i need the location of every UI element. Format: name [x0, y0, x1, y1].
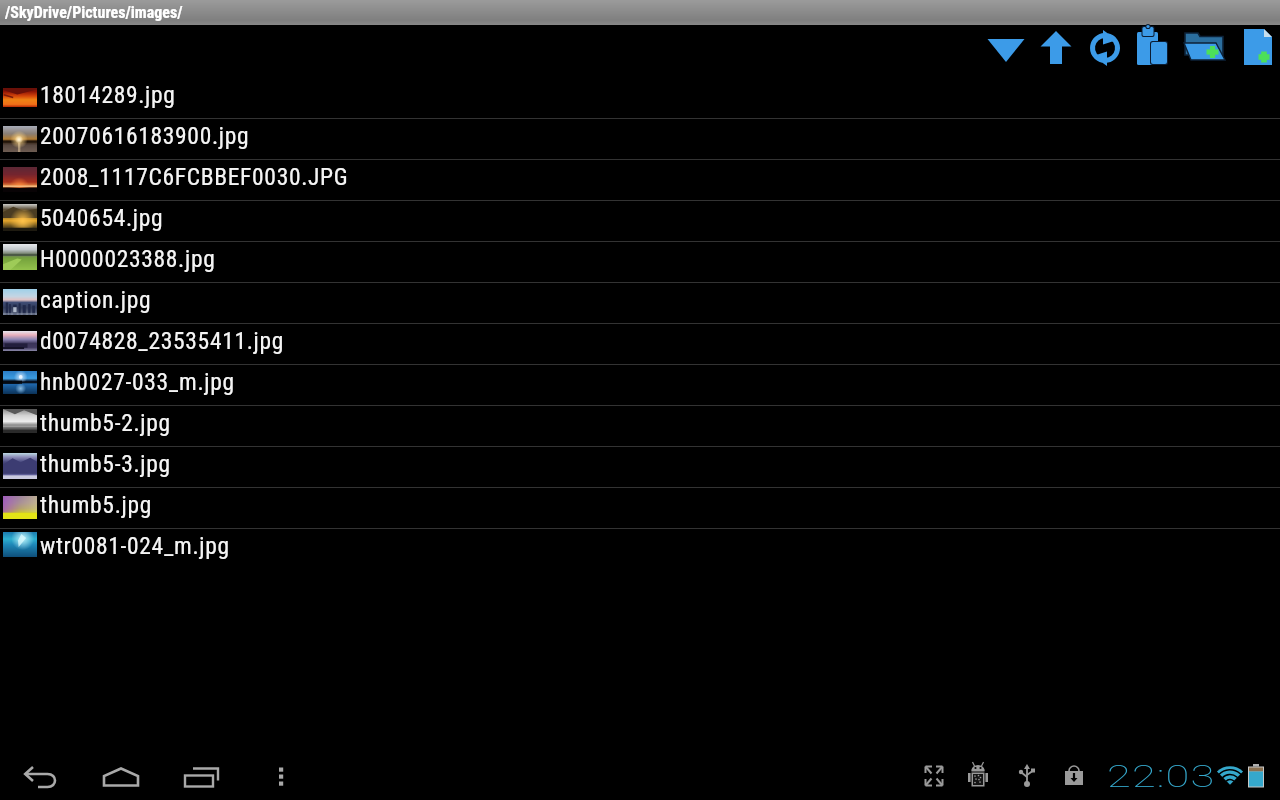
button[interactable]: H0000023388.jpg — [0, 242, 1280, 282]
button[interactable]: thumb5-3.jpg — [0, 447, 1280, 487]
button[interactable]: 18014289.jpg — [0, 78, 1280, 118]
button[interactable]: hnb0027-033_m.jpg — [0, 365, 1280, 405]
button[interactable]: New folder — [1180, 21, 1228, 73]
button[interactable]: 20070616183900.jpg — [0, 119, 1280, 159]
button[interactable]: Recent apps — [177, 752, 225, 800]
button[interactable]: d0074828_23535411.jpg — [0, 324, 1280, 364]
button[interactable]: thumb5.jpg — [0, 488, 1280, 528]
staticText: 2008_1117C6FCBBEF0030.JPG — [40, 163, 349, 191]
staticText: wtr0081-024_m.jpg — [40, 532, 230, 560]
button[interactable]: Sort — [982, 22, 1030, 74]
staticText: d0074828_23535411.jpg — [40, 327, 285, 355]
button[interactable]: More options — [257, 752, 305, 800]
button[interactable]: Parent folder — [1032, 21, 1080, 73]
staticText: caption.jpg — [40, 286, 152, 314]
button[interactable]: Home — [97, 752, 145, 800]
button[interactable]: Refresh — [1081, 22, 1129, 74]
button[interactable]: New file — [1234, 21, 1280, 73]
button[interactable]: thumb5-2.jpg — [0, 406, 1280, 446]
button[interactable]: caption.jpg — [0, 283, 1280, 323]
staticText: thumb5.jpg — [40, 491, 152, 519]
button[interactable]: Back — [18, 752, 66, 800]
staticText: H0000023388.jpg — [40, 245, 216, 273]
staticText: /SkyDrive/Pictures/images/ — [5, 3, 183, 22]
staticText: 20070616183900.jpg — [40, 122, 250, 150]
staticText: 22:03 — [1107, 758, 1216, 794]
staticText: 18014289.jpg — [40, 81, 176, 109]
button[interactable]: 2008_1117C6FCBBEF0030.JPG — [0, 160, 1280, 200]
button[interactable]: Paste — [1128, 20, 1176, 72]
staticText: 5040654.jpg — [40, 204, 164, 232]
button[interactable]: wtr0081-024_m.jpg — [0, 529, 1280, 569]
button[interactable]: 5040654.jpg — [0, 201, 1280, 241]
staticText: thumb5-2.jpg — [40, 409, 171, 437]
staticText: hnb0027-033_m.jpg — [40, 368, 235, 396]
staticText: thumb5-3.jpg — [40, 450, 171, 478]
